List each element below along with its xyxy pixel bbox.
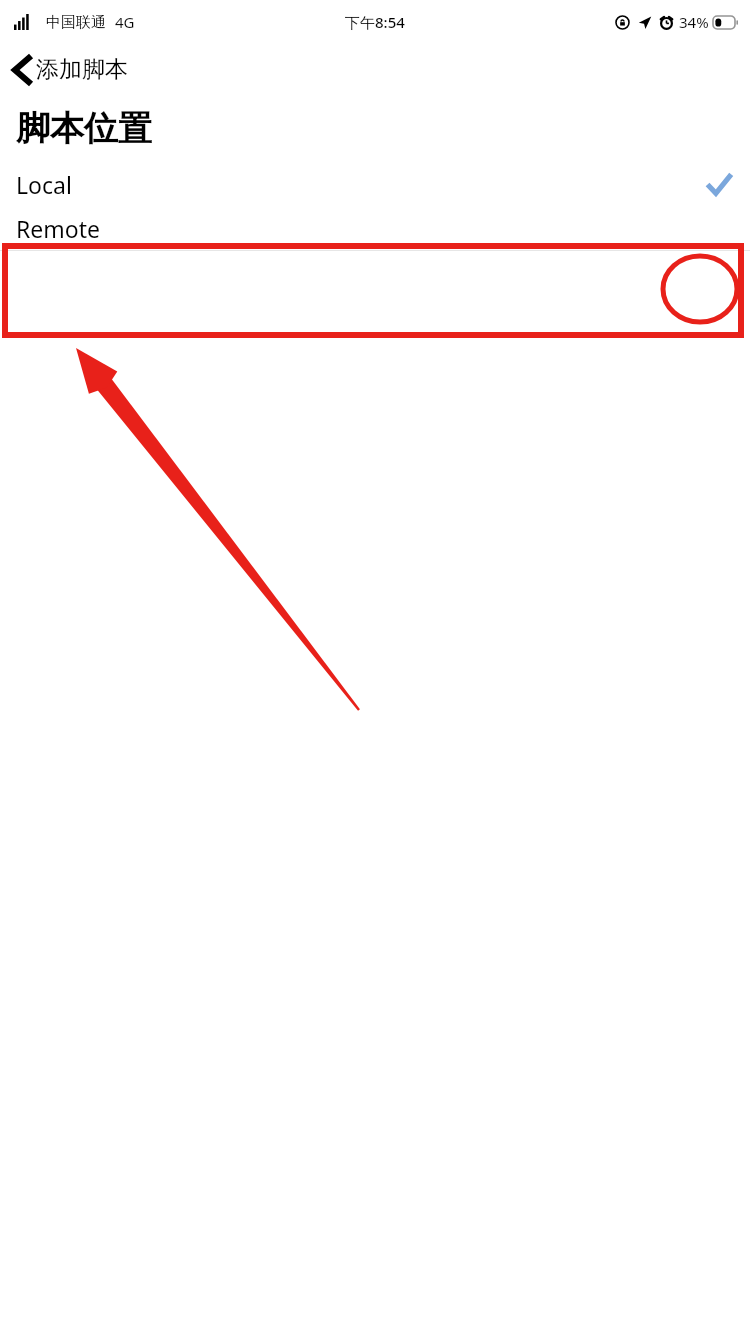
staticText: 中国联通 [46, 13, 106, 32]
button[interactable]: Back [0, 51, 142, 88]
staticText: 34% [679, 12, 709, 32]
button[interactable]: Local [0, 162, 750, 206]
staticText: 下午8:54 [345, 12, 405, 32]
staticText: 添加脚本 [36, 55, 128, 84]
staticText: Remote [16, 213, 100, 244]
staticText: 4G [115, 12, 135, 32]
button[interactable]: Remote [0, 206, 750, 250]
other: Back [14, 58, 30, 82]
staticText: 脚本位置 [16, 107, 152, 150]
staticText: Local [16, 169, 72, 200]
